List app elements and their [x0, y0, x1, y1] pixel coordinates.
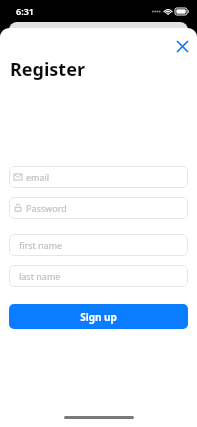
staticText: 6:31 [16, 5, 34, 17]
button[interactable]: email [9, 166, 188, 188]
button[interactable]: Close [170, 34, 194, 58]
staticText: first name [19, 239, 63, 251]
staticText: last name [19, 270, 61, 282]
button[interactable]: Sign up [9, 304, 188, 329]
staticText: Password [26, 202, 67, 214]
staticText: email [26, 171, 50, 183]
staticText: Sign up [80, 310, 117, 324]
button[interactable]: first name [9, 234, 188, 256]
staticText: Register [10, 57, 85, 82]
button[interactable]: Password [9, 197, 188, 219]
button[interactable]: last name [9, 265, 188, 287]
